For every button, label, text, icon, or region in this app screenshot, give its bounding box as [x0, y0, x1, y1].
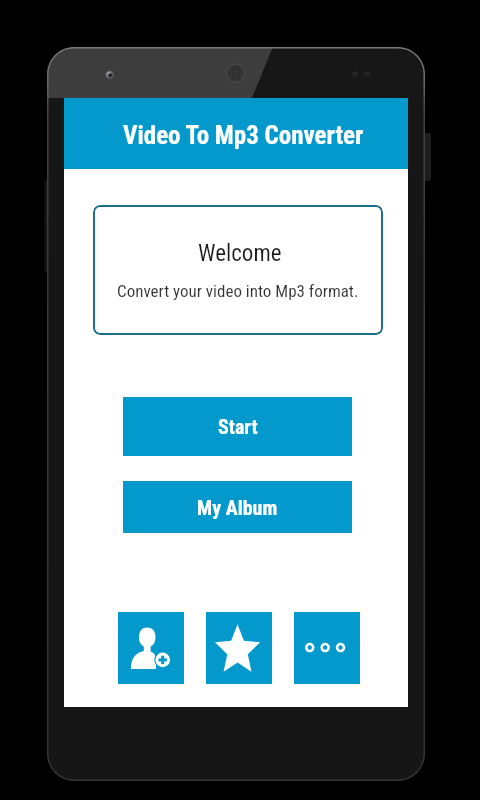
button[interactable]: Add contact [118, 612, 184, 684]
button[interactable]: Start [123, 397, 352, 456]
staticText: Start [218, 415, 258, 438]
staticText: Convert your video into Mp3 format. [117, 281, 359, 301]
staticText: My Album [197, 496, 278, 519]
staticText: Video To Mp3 Converter [123, 121, 364, 150]
staticText: Welcome [198, 240, 282, 267]
button[interactable]: My Album [123, 481, 352, 533]
button[interactable]: More options [294, 612, 360, 684]
button[interactable]: Favourites [206, 612, 272, 684]
